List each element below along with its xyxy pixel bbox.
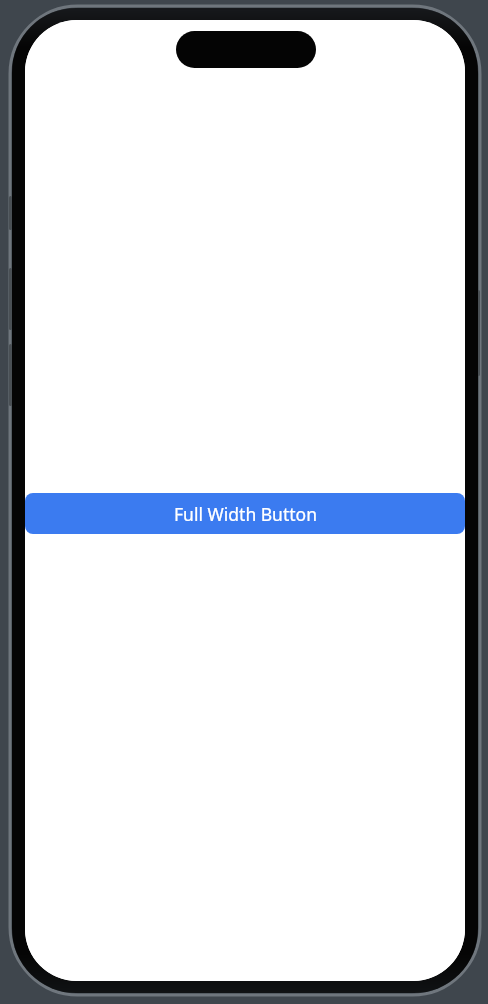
staticText: Full Width Button	[174, 502, 317, 526]
button[interactable]: Full Width Button	[25, 493, 465, 534]
